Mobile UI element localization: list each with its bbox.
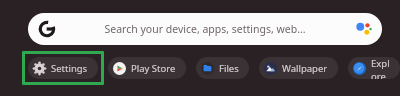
- staticText: Search your device, apps, settings, web…: [58, 22, 352, 36]
- button[interactable]: Files: [196, 57, 249, 79]
- button[interactable]: Play Store: [108, 57, 186, 79]
- staticText: Wallpaper: [282, 62, 328, 75]
- staticText: Play Store: [131, 62, 176, 75]
- button[interactable]: Explore: [348, 57, 400, 79]
- staticText: Files: [219, 62, 239, 75]
- button[interactable]: Settings: [28, 57, 98, 79]
- staticText: Explore: [371, 57, 390, 79]
- button[interactable]: Wallpaper: [259, 57, 338, 79]
- button[interactable]: Search your device, apps, settings, web…: [28, 13, 382, 45]
- button[interactable]: Google Assistant: [352, 18, 374, 40]
- staticText: Settings: [51, 62, 88, 75]
